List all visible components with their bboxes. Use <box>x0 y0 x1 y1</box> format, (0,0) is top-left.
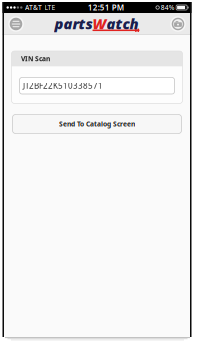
button[interactable]: Menu <box>7 15 24 32</box>
staticText: LTE <box>44 3 55 12</box>
button[interactable]: Scan with camera <box>169 15 186 32</box>
staticText: 84% <box>161 3 175 12</box>
staticText: Send To Catalog Screen <box>59 120 135 128</box>
staticText: JT2BF22K510338571 <box>23 80 103 91</box>
staticText: atch <box>106 14 138 33</box>
button[interactable]: Send To Catalog Screen <box>12 114 181 133</box>
staticText: parts <box>54 14 92 33</box>
staticText: W <box>92 14 106 33</box>
staticText: VIN Scan <box>21 54 50 63</box>
staticText: 12:51 PM <box>88 2 124 13</box>
staticText: AT&T <box>25 3 42 12</box>
